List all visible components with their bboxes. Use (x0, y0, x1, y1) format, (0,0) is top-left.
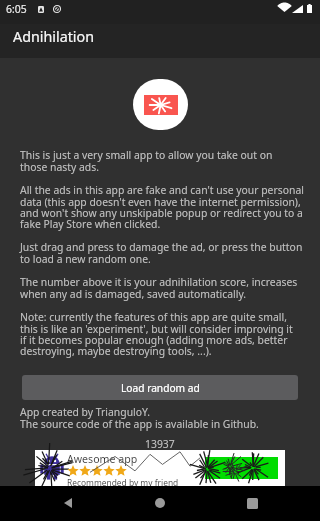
button[interactable]: Advertisement (35, 450, 285, 486)
staticText: Just drag and press to damage the ad, or… (20, 240, 303, 266)
staticText: Note: currently the features of this app… (20, 310, 293, 358)
staticText: This is just a very small app to allow y… (20, 148, 273, 174)
staticText: 6:05 (6, 2, 27, 16)
button[interactable]: Load random ad (22, 375, 298, 400)
staticText: The number above it is your adnihilation… (20, 275, 298, 301)
staticText: 13937 (145, 437, 175, 451)
button[interactable]: Back (52, 487, 84, 519)
staticText: Recommended by my friend (67, 477, 179, 488)
button[interactable]: Recent apps (236, 487, 268, 519)
staticText: App created by TrianguloY. The source co… (20, 405, 259, 431)
button[interactable]: Home (144, 487, 176, 519)
staticText: Adnihilation (13, 27, 95, 46)
staticText: All the ads in this app are fake and can… (20, 183, 304, 231)
staticText: Awesome app (67, 452, 138, 466)
staticText: Load random ad (121, 381, 200, 395)
button[interactable]: Adnihilation (0, 24, 320, 58)
